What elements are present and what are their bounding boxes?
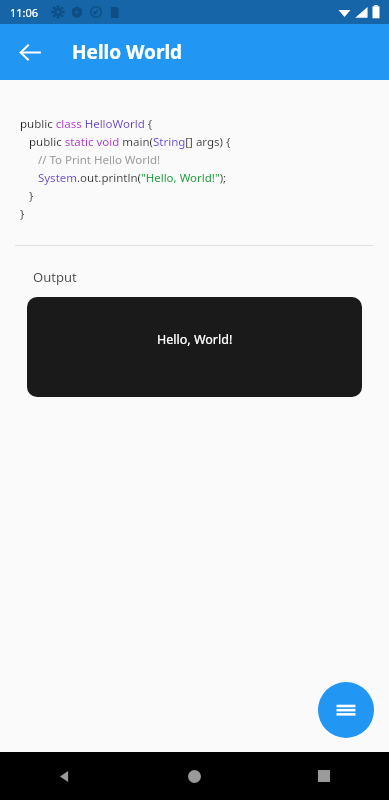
button[interactable]: Menu [318, 682, 374, 738]
button[interactable]: Hello, World! [27, 297, 362, 397]
staticText: public class HelloWorld { public static … [20, 116, 231, 221]
staticText: Hello, World! [157, 331, 233, 348]
button[interactable]: Back [8, 30, 52, 74]
staticText: 11:06 [10, 5, 39, 20]
staticText: Hello World [72, 39, 183, 65]
button[interactable]: Home [129, 752, 259, 800]
button[interactable]: Recent apps [259, 752, 389, 800]
staticText: Output [33, 268, 77, 286]
button[interactable]: Back [0, 752, 129, 800]
